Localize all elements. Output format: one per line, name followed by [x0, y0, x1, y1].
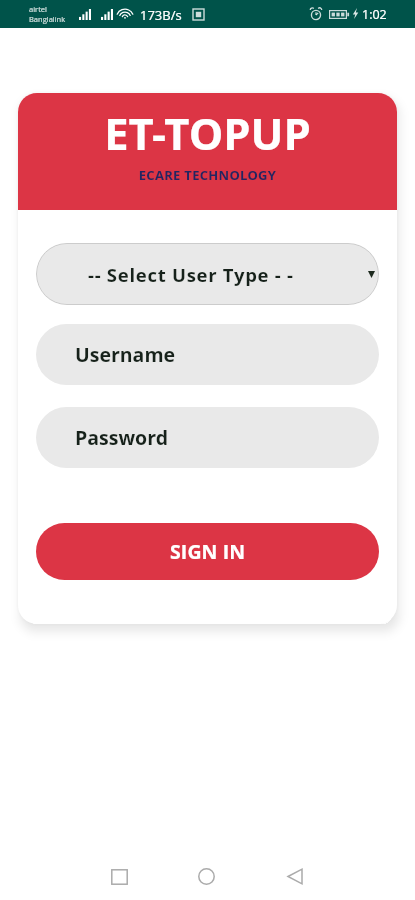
- staticText: SIGN IN: [170, 538, 246, 565]
- button[interactable]: Back: [272, 854, 317, 899]
- button[interactable]: Recent apps: [97, 854, 142, 899]
- staticText: Password: [75, 424, 168, 451]
- button[interactable]: Password: [36, 407, 379, 468]
- staticText: ECARE TECHNOLOGY: [18, 166, 397, 184]
- staticText: -- Select User Type - -: [88, 262, 294, 287]
- staticText: Username: [75, 341, 176, 368]
- staticText: ET-TOPUP: [18, 104, 397, 163]
- staticText: 173B/s: [140, 6, 182, 24]
- staticText: airtel: [29, 4, 47, 14]
- button[interactable]: SIGN IN: [36, 523, 379, 580]
- staticText: Banglalink: [29, 14, 66, 24]
- button[interactable]: Home: [184, 854, 229, 899]
- staticText: 1:02: [362, 6, 387, 23]
- button[interactable]: -- Select User Type - -: [36, 243, 379, 305]
- button[interactable]: Username: [36, 324, 379, 385]
